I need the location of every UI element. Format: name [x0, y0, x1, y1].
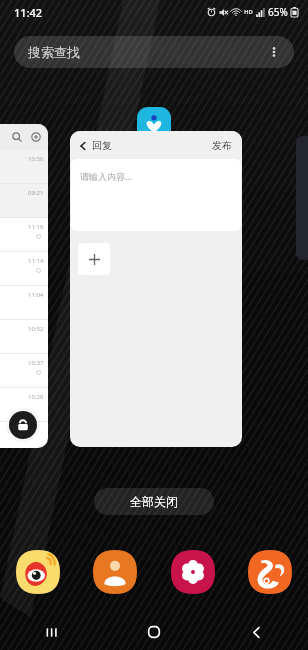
- button[interactable]: 请输入内容...: [71, 159, 241, 231]
- button[interactable]: 回复: [70, 131, 242, 447]
- staticText: 全部关闭: [130, 494, 178, 509]
- button[interactable]: Lock app: [9, 411, 37, 439]
- button[interactable]: 10:52: [0, 320, 48, 354]
- staticText: 09:21: [28, 189, 44, 197]
- button[interactable]: UC Browser: [246, 548, 294, 596]
- staticText: 搜索查找: [28, 44, 80, 60]
- staticText: 10:52: [28, 325, 44, 333]
- button[interactable]: 发布: [212, 139, 232, 152]
- button[interactable]: Gallery: [169, 548, 217, 596]
- staticText: 10:37: [28, 359, 44, 367]
- button[interactable]: Back: [205, 614, 308, 650]
- button[interactable]: Recent apps: [0, 614, 102, 650]
- staticText: 回复: [92, 139, 112, 152]
- staticText: 11:14: [28, 257, 44, 265]
- staticText: 65%: [268, 5, 288, 19]
- staticText: 10:20: [28, 393, 44, 401]
- button[interactable]: More options: [262, 40, 286, 64]
- staticText: 发布: [212, 139, 232, 152]
- staticText: 11:19: [28, 223, 44, 231]
- button[interactable]: Weibo: [14, 548, 62, 596]
- button[interactable]: 10:56: [0, 150, 48, 184]
- staticText: 11:04: [28, 291, 44, 299]
- button[interactable]: Home: [102, 614, 205, 650]
- button[interactable]: 11:14: [0, 252, 48, 286]
- button[interactable]: 回复: [78, 139, 112, 152]
- button[interactable]: 10:56: [0, 124, 48, 448]
- staticText: 请输入内容...: [80, 170, 133, 182]
- button[interactable]: 09:21: [0, 184, 48, 218]
- staticText: 10:56: [28, 155, 44, 163]
- button[interactable]: 10:37: [0, 354, 48, 388]
- staticText: 11:42: [14, 5, 43, 20]
- staticText: HD: [244, 8, 253, 16]
- button[interactable]: 搜索查找: [14, 36, 294, 68]
- button[interactable]: App icon: [137, 107, 171, 141]
- button[interactable]: 全部关闭: [94, 488, 214, 515]
- button[interactable]: 11:19: [0, 218, 48, 252]
- button[interactable]: Contacts: [91, 548, 139, 596]
- button[interactable]: [296, 136, 308, 260]
- button[interactable]: Add image: [78, 243, 110, 275]
- button[interactable]: 11:04: [0, 286, 48, 320]
- button[interactable]: 10:20: [0, 388, 48, 422]
